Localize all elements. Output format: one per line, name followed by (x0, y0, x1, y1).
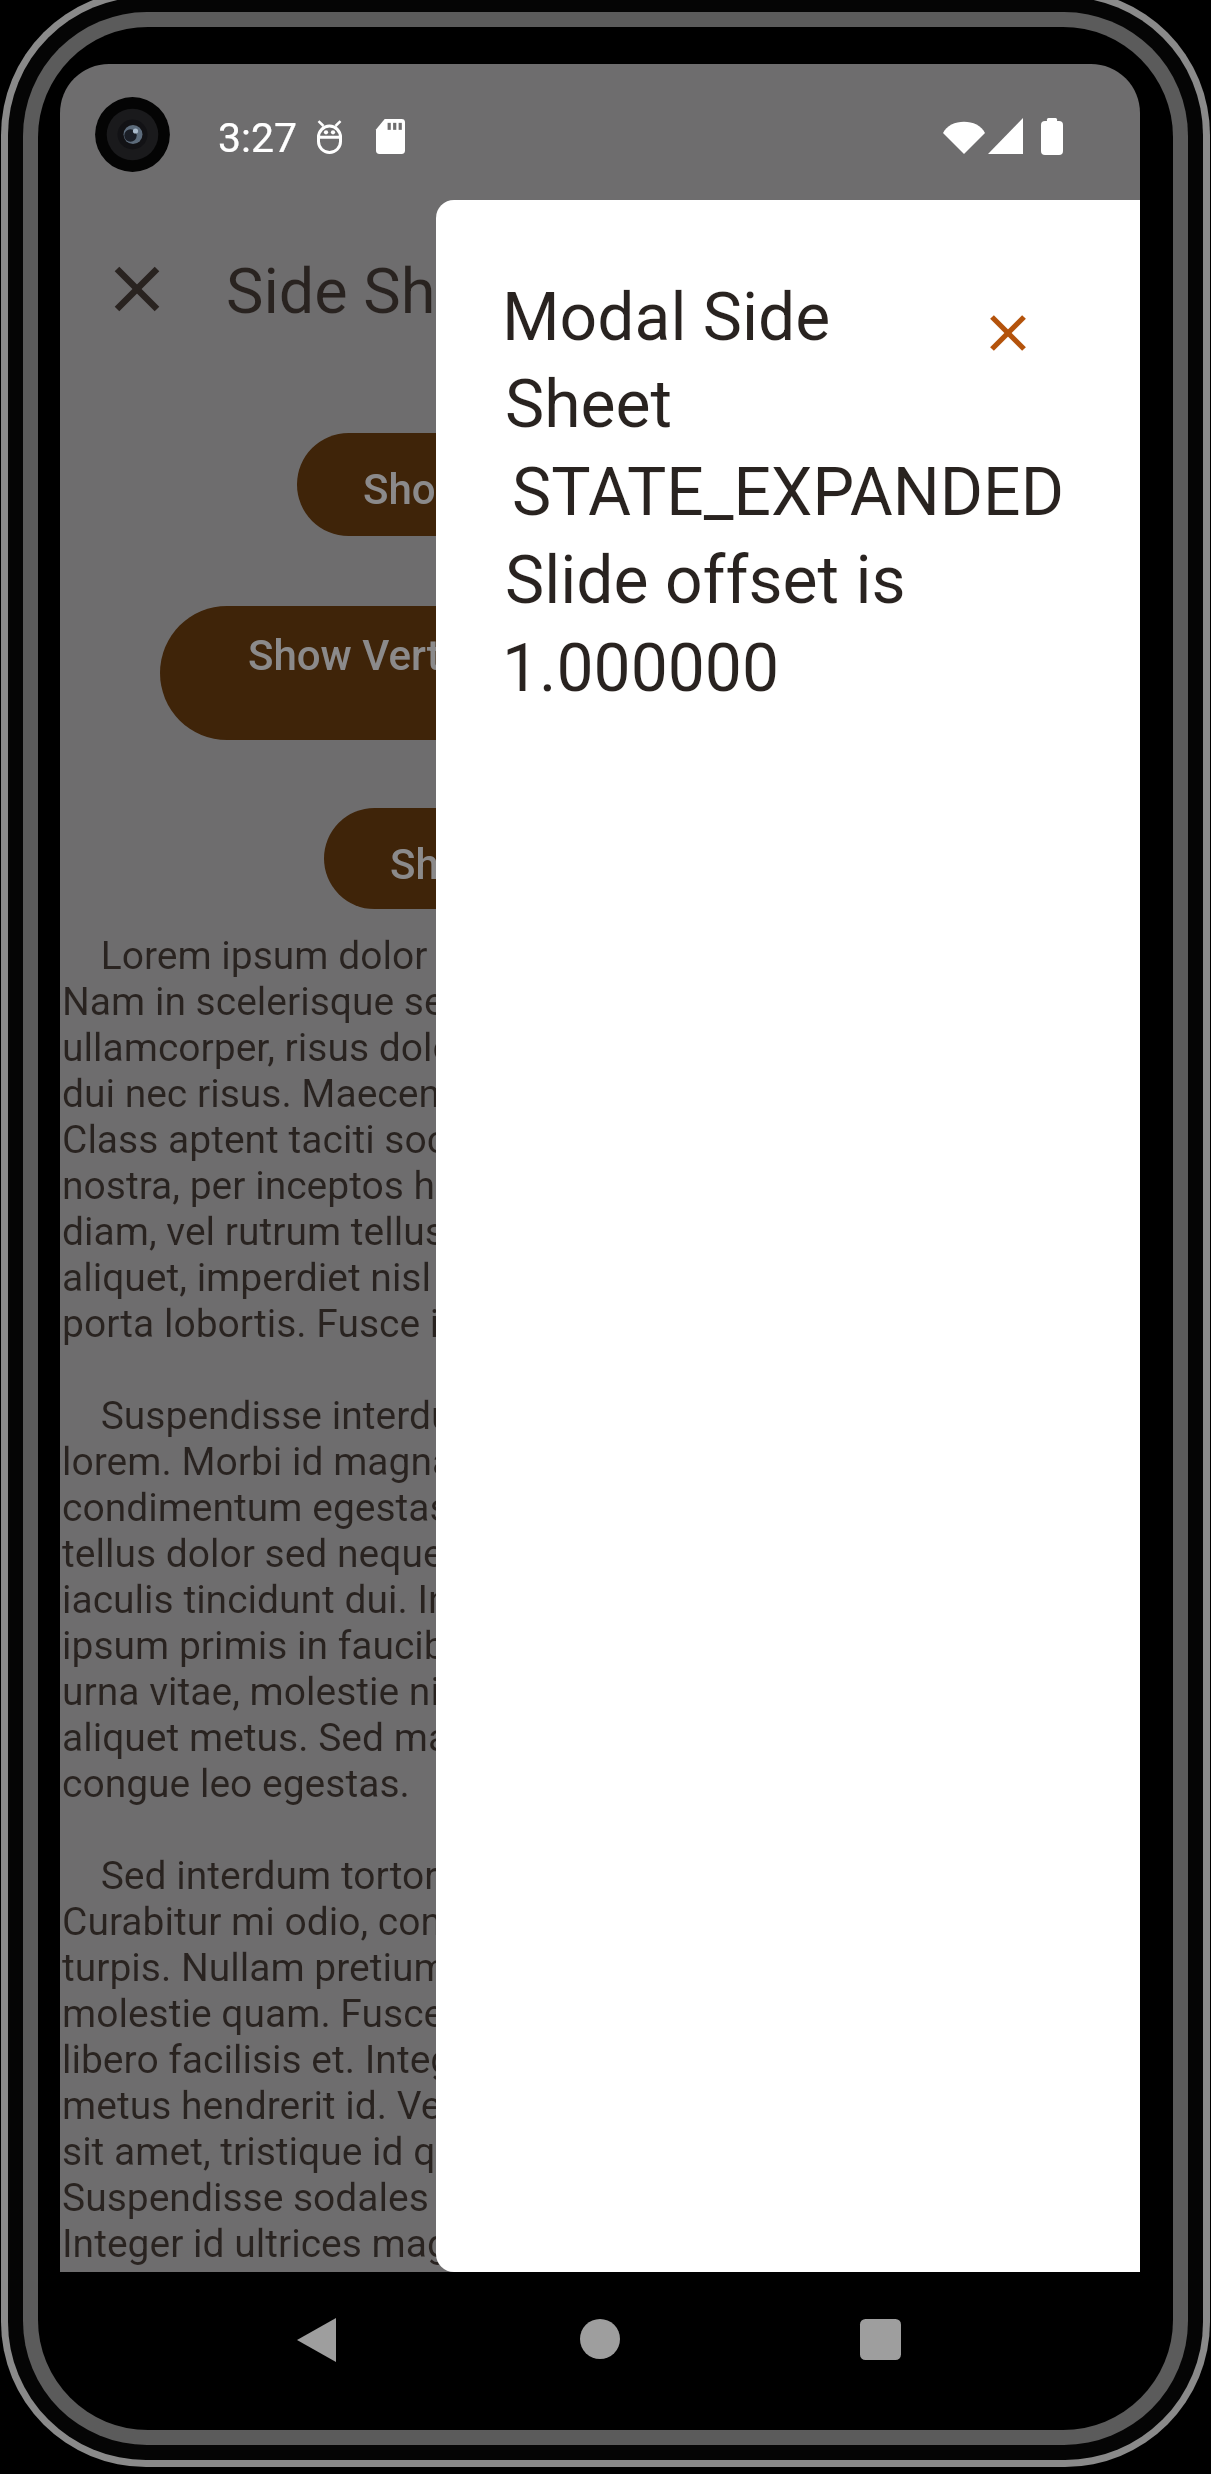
button[interactable]: Home (580, 2319, 620, 2359)
button[interactable]: Recents (860, 2319, 901, 2360)
button[interactable]: Back (297, 2318, 336, 2362)
staticText: 3:27 (218, 114, 298, 162)
staticText: Lorem ipsum dolor sit amet, consectetur … (62, 933, 1138, 2267)
button[interactable]: Show Vertically Scrollable Side Sheet (160, 606, 1040, 740)
staticText: 1.000000 (502, 630, 780, 707)
staticText: Show Vertically Scrollable Side Sheet (248, 631, 946, 680)
button[interactable]: Show Detached Side Sheet (324, 808, 876, 909)
staticText: Sheet (505, 366, 673, 443)
button[interactable]: Show Modal Side Sheet (297, 433, 903, 536)
staticText: Side Sheets (226, 255, 556, 329)
button[interactable]: Close (97, 249, 177, 329)
staticText: Show Detached Side Sheet (390, 840, 876, 889)
staticText: Show Modal Side Sheet (363, 465, 806, 514)
staticText: Slide offset is (505, 542, 906, 619)
staticText: STATE_EXPANDED (512, 454, 1064, 531)
staticText: Modal Side (502, 279, 831, 356)
button[interactable]: Close sheet (968, 293, 1048, 373)
